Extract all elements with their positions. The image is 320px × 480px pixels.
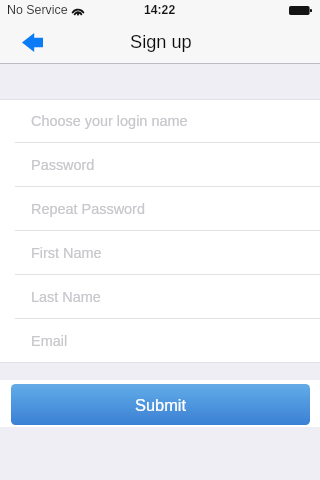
staticText: Choose your login name	[31, 113, 188, 129]
staticText: Sign up	[130, 32, 192, 52]
staticText: Email	[31, 333, 68, 349]
button[interactable]: Email	[0, 319, 320, 363]
staticText: Password	[31, 157, 95, 173]
staticText: Last Name	[31, 289, 101, 305]
staticText: Submit	[135, 396, 187, 414]
button[interactable]: Password	[0, 143, 320, 187]
button[interactable]: Back	[0, 20, 64, 64]
button[interactable]: First Name	[0, 231, 320, 275]
staticText: First Name	[31, 245, 102, 261]
button[interactable]: Last Name	[0, 275, 320, 319]
button[interactable]: Submit	[11, 384, 310, 425]
staticText: No Service	[7, 3, 68, 17]
button[interactable]: Repeat Password	[0, 187, 320, 231]
button[interactable]: Choose your login name	[0, 99, 320, 143]
staticText: 14:22	[144, 3, 176, 17]
staticText: Repeat Password	[31, 201, 145, 217]
